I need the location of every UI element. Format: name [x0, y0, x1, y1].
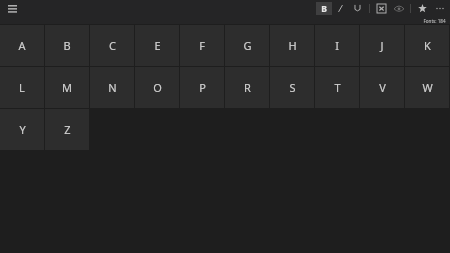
staticText: K — [424, 38, 431, 53]
button[interactable]: Underline — [349, 1, 366, 16]
staticText: N — [108, 80, 117, 95]
staticText: T — [334, 80, 341, 95]
button[interactable]: G — [225, 25, 269, 66]
button[interactable]: Italic — [332, 1, 349, 16]
staticText: M — [62, 80, 72, 95]
staticText: C — [109, 38, 116, 53]
button[interactable]: Z — [45, 109, 89, 150]
staticText: F — [199, 38, 205, 53]
staticText: G — [243, 38, 252, 53]
button[interactable]: H — [270, 25, 314, 66]
button[interactable]: C — [90, 25, 134, 66]
button[interactable]: T — [315, 67, 359, 108]
staticText: V — [379, 80, 386, 95]
button[interactable]: E — [135, 25, 179, 66]
staticText: J — [380, 38, 384, 53]
staticText: A — [18, 38, 26, 53]
button[interactable]: L — [0, 67, 44, 108]
staticText: Fonts: 184 — [423, 18, 446, 24]
staticText: B — [321, 3, 327, 15]
button[interactable]: O — [135, 67, 179, 108]
button[interactable]: Preview — [390, 1, 407, 16]
button[interactable]: Y — [0, 109, 44, 150]
staticText: Z — [64, 122, 71, 137]
button[interactable]: Favorite — [414, 1, 431, 16]
staticText: L — [19, 80, 25, 95]
staticText: O — [153, 80, 162, 95]
button[interactable]: S — [270, 67, 314, 108]
button[interactable]: F — [180, 25, 224, 66]
button[interactable]: Bold — [316, 2, 332, 15]
button[interactable]: I — [315, 25, 359, 66]
staticText: H — [288, 38, 297, 53]
staticText: P — [199, 80, 206, 95]
button[interactable]: M — [45, 67, 89, 108]
staticText: R — [244, 80, 251, 95]
button[interactable]: N — [90, 67, 134, 108]
button[interactable]: B — [45, 25, 89, 66]
button[interactable]: J — [360, 25, 404, 66]
button[interactable]: A — [0, 25, 44, 66]
button[interactable]: More options — [431, 1, 448, 16]
staticText: E — [154, 38, 161, 53]
button[interactable]: P — [180, 67, 224, 108]
staticText: B — [63, 38, 71, 53]
staticText: Y — [19, 122, 26, 137]
staticText: W — [422, 80, 433, 95]
button[interactable]: W — [405, 67, 449, 108]
button[interactable]: K — [405, 25, 449, 66]
button[interactable]: Menu — [4, 1, 20, 16]
button[interactable]: V — [360, 67, 404, 108]
staticText: I — [335, 38, 339, 53]
button[interactable]: Select all — [373, 1, 390, 16]
button[interactable]: R — [225, 67, 269, 108]
staticText: S — [289, 80, 296, 95]
